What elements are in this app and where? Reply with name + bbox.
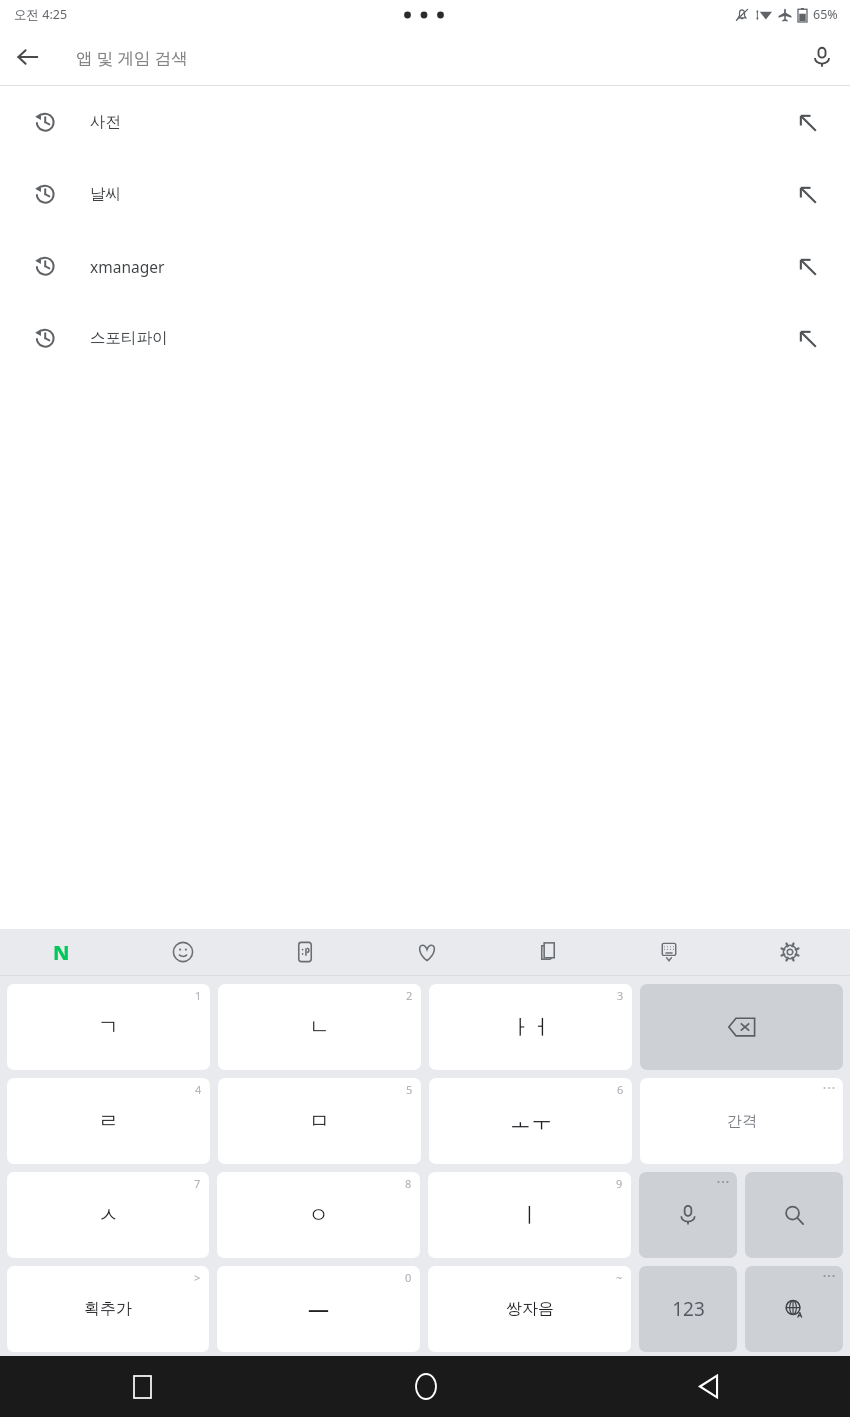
staticText: 날씨 bbox=[90, 184, 764, 204]
button[interactable]: 8 bbox=[217, 1172, 420, 1258]
button[interactable]: Insert 사전 into search bbox=[764, 86, 850, 158]
staticText: 9 bbox=[616, 1176, 623, 1191]
staticText: 앱 및 게임 검색 bbox=[76, 46, 794, 69]
button[interactable]: Back bbox=[567, 1356, 850, 1417]
button[interactable]: Search bbox=[745, 1172, 843, 1258]
staticText: 123 bbox=[672, 1296, 705, 1322]
staticText: 획추가 bbox=[84, 1299, 132, 1319]
button[interactable]: Emoticon bbox=[244, 929, 366, 975]
button[interactable]: Settings bbox=[729, 929, 850, 975]
button[interactable]: 3 bbox=[429, 984, 632, 1070]
staticText: ㅗㅜ bbox=[510, 1108, 552, 1134]
staticText: > bbox=[194, 1270, 201, 1285]
staticText: N bbox=[53, 939, 70, 966]
staticText: 쌍자음 bbox=[506, 1299, 554, 1319]
button[interactable]: Hide keyboard bbox=[608, 929, 729, 975]
button[interactable]: 사전 bbox=[0, 86, 850, 158]
button[interactable]: Back bbox=[0, 29, 56, 85]
button[interactable]: 날씨 bbox=[0, 158, 850, 230]
button[interactable]: 9 bbox=[428, 1172, 631, 1258]
staticText: ㄴ bbox=[309, 1014, 330, 1040]
staticText: 65% bbox=[813, 6, 838, 23]
staticText: ~ bbox=[616, 1270, 623, 1285]
button[interactable]: Naver bbox=[0, 929, 122, 975]
button[interactable]: 5 bbox=[218, 1078, 421, 1164]
staticText: ㅅ bbox=[98, 1202, 119, 1228]
button[interactable]: xmanager bbox=[0, 230, 850, 302]
staticText: 7 bbox=[194, 1176, 201, 1191]
staticText: 오전 4:25 bbox=[14, 6, 68, 23]
staticText: — bbox=[308, 1295, 329, 1324]
button[interactable]: ~ bbox=[428, 1266, 631, 1352]
button[interactable]: Insert 스포티파이 into search bbox=[764, 302, 850, 374]
button[interactable]: 2 bbox=[218, 984, 421, 1070]
button[interactable]: Emoji bbox=[122, 929, 244, 975]
button[interactable]: 1 bbox=[7, 984, 210, 1070]
button[interactable]: Insert xmanager into search bbox=[764, 230, 850, 302]
button[interactable]: Recent apps bbox=[0, 1356, 284, 1417]
button[interactable]: Clipboard bbox=[487, 929, 608, 975]
button[interactable]: > bbox=[7, 1266, 209, 1352]
button[interactable]: 123 bbox=[639, 1266, 737, 1352]
staticText: 5 bbox=[406, 1082, 413, 1097]
button[interactable]: Home bbox=[284, 1356, 567, 1417]
staticText: 1 bbox=[195, 988, 202, 1003]
staticText: ㅁ bbox=[309, 1108, 330, 1134]
button[interactable]: 0 bbox=[217, 1266, 420, 1352]
button[interactable]: Change language bbox=[745, 1266, 843, 1352]
button[interactable]: Voice search bbox=[794, 29, 850, 85]
staticText: 6 bbox=[617, 1082, 624, 1097]
staticText: ㅇ bbox=[308, 1202, 329, 1228]
button[interactable]: 스포티파이 bbox=[0, 302, 850, 374]
button[interactable]: 7 bbox=[7, 1172, 209, 1258]
button[interactable]: 간격 bbox=[640, 1078, 843, 1164]
button[interactable]: Voice input bbox=[639, 1172, 737, 1258]
staticText: ㄹ bbox=[98, 1108, 119, 1134]
staticText: 스포티파이 bbox=[90, 328, 764, 348]
staticText: 간격 bbox=[727, 1112, 757, 1131]
staticText: 사전 bbox=[90, 112, 764, 132]
staticText: ㄱ bbox=[98, 1014, 119, 1040]
staticText: 0 bbox=[405, 1270, 412, 1285]
staticText: 2 bbox=[406, 988, 413, 1003]
staticText: 8 bbox=[405, 1176, 412, 1191]
button[interactable]: 4 bbox=[7, 1078, 210, 1164]
staticText: xmanager bbox=[90, 256, 764, 277]
staticText: ㅏㅓ bbox=[510, 1014, 552, 1040]
staticText: 3 bbox=[617, 988, 624, 1003]
button[interactable]: Insert 날씨 into search bbox=[764, 158, 850, 230]
staticText: 4 bbox=[195, 1082, 202, 1097]
button[interactable]: 6 bbox=[429, 1078, 632, 1164]
staticText: ㅣ bbox=[519, 1202, 540, 1228]
button[interactable]: Favourites bbox=[366, 929, 487, 975]
button[interactable]: Backspace bbox=[640, 984, 843, 1070]
